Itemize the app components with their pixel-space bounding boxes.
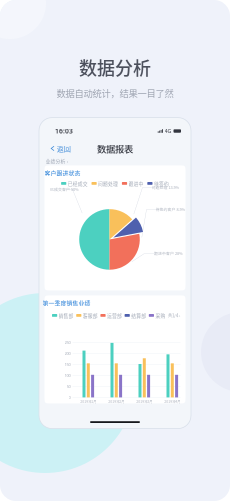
staticText: 100 xyxy=(64,373,70,378)
staticText: 150 xyxy=(64,362,70,367)
staticText: 销售部 xyxy=(59,312,74,319)
staticText: 共1/4 › xyxy=(168,312,180,318)
staticText: 4G xyxy=(164,127,171,135)
button[interactable]: 返回 xyxy=(39,140,77,156)
staticText: 运营部 xyxy=(107,312,122,319)
staticText: 50 xyxy=(66,384,70,389)
staticText: 数据分析 xyxy=(79,54,151,80)
staticText: 2019年3月 xyxy=(136,399,152,404)
staticText: › xyxy=(66,157,67,164)
staticText: 客户跟进状态 xyxy=(44,169,80,177)
staticText: 已成交客户 50% xyxy=(50,187,79,192)
staticText: 客服部 xyxy=(83,312,98,319)
staticText: 问题处理 xyxy=(98,180,118,187)
staticText: 2019年1月 xyxy=(80,399,96,404)
staticText: 业绩分析 xyxy=(45,157,65,164)
staticText: 数据自动统计，结果一目了然 xyxy=(56,86,173,100)
staticText: 问题处理 13.5% xyxy=(151,185,179,190)
staticText: 0 xyxy=(68,395,70,400)
staticText: 待签约 xyxy=(154,180,169,187)
staticText: 第一季度销售业绩 xyxy=(42,299,90,307)
staticText: 16:03 xyxy=(55,127,73,135)
staticText: 返回 xyxy=(57,143,71,154)
staticText: 200 xyxy=(64,351,70,356)
staticText: 跟进中客户 28% xyxy=(154,251,183,256)
staticText: 已经成交 xyxy=(68,180,88,187)
staticText: 结算部 xyxy=(131,312,146,319)
staticText: 待签约客户 8.5% xyxy=(155,207,185,212)
staticText: 250 xyxy=(64,340,70,345)
staticText: 数据报表 xyxy=(97,142,133,155)
staticText: 跟进中 xyxy=(128,180,143,187)
button[interactable]: 业绩分析 xyxy=(44,156,67,165)
staticText: 2019年2月 xyxy=(108,399,124,404)
staticText: 采购 xyxy=(155,312,165,319)
staticText: 2019年4月 xyxy=(164,399,180,404)
